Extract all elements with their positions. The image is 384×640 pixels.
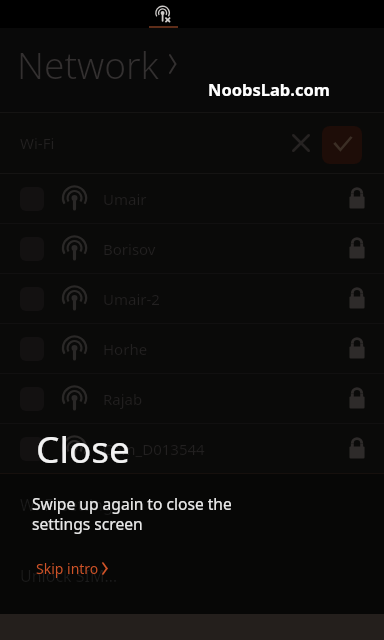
button[interactable]: Umair-2	[0, 274, 384, 323]
staticText: Umair-2	[103, 289, 160, 309]
button[interactable]: Confirm	[322, 126, 362, 164]
staticText: Com_D013544	[103, 439, 205, 459]
staticText: Close	[36, 423, 130, 473]
staticText: Horhe	[103, 339, 148, 359]
staticText: Unlock SIM…	[20, 565, 118, 587]
staticText: Wi-Fi settings	[20, 494, 121, 516]
button[interactable]: Com_D013544	[0, 424, 384, 473]
button[interactable]: Skip intro	[36, 556, 108, 580]
button[interactable]: Borisov	[0, 224, 384, 273]
button[interactable]: Cancel	[282, 118, 319, 168]
button[interactable]: Umair	[0, 174, 384, 223]
button[interactable]: Rajab	[0, 374, 384, 423]
button[interactable]: Network disconnected	[153, 4, 177, 28]
staticText: Network	[17, 39, 159, 89]
staticText: Borisov	[103, 239, 156, 259]
staticText: Skip intro	[36, 559, 99, 578]
staticText: Rajab	[103, 389, 143, 409]
staticText: Wi-Fi	[20, 133, 55, 153]
staticText: NoobsLab.com	[208, 78, 330, 100]
staticText: Swipe up again to close the settings scr…	[32, 493, 232, 535]
button[interactable]: Horhe	[0, 324, 384, 373]
staticText: Umair	[103, 189, 147, 209]
